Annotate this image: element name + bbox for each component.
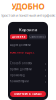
staticText: › — [45, 67, 46, 72]
staticText: Корзина — [19, 27, 37, 32]
button[interactable]: Самовывоз — [29, 34, 46, 39]
button[interactable]: Промокод — [8, 72, 48, 78]
staticText: Способ оплаты — [10, 62, 32, 65]
button[interactable]: Комментарий — [8, 78, 48, 84]
button[interactable]: ОФОРМИТЬ ЗАКАЗ — [10, 91, 46, 97]
staticText: Доставка — [12, 35, 26, 38]
staticText: Изменить адрес — [10, 51, 34, 54]
staticText: Самовывоз — [29, 35, 45, 38]
staticText: Комментарий — [10, 80, 29, 83]
button[interactable]: Время доставки — [8, 66, 48, 72]
staticText: › — [45, 61, 46, 66]
button[interactable]: Доставка — [10, 34, 27, 39]
staticText: простой и понятный интерфейс — [0, 13, 55, 18]
staticText: ОФОРМИТЬ ЗАКАЗ — [14, 92, 42, 96]
staticText: › — [45, 79, 46, 84]
staticText: › — [45, 73, 46, 78]
staticText: Время доставки — [10, 68, 32, 71]
staticText: УДОБНО — [11, 1, 44, 12]
staticText: Адрес доставки — [10, 43, 31, 47]
staticText: Промокод — [10, 74, 25, 77]
button[interactable]: Способ оплаты — [8, 60, 48, 66]
